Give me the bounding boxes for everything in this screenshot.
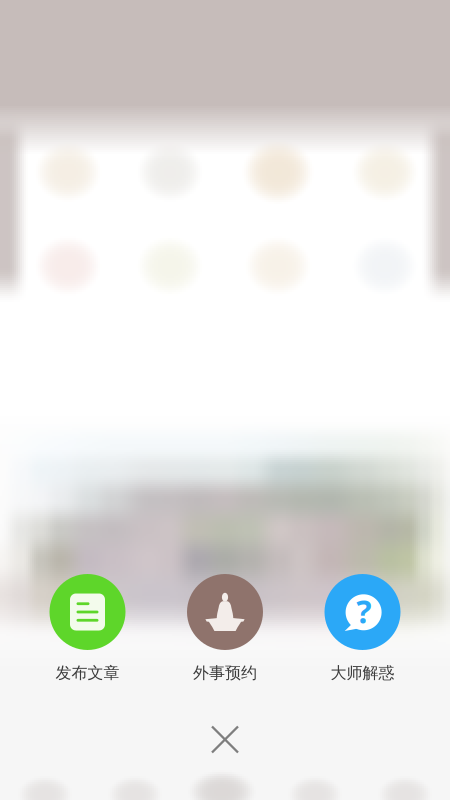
staticText: 外事预约 xyxy=(193,663,257,683)
staticText: 发布文章 xyxy=(55,663,119,683)
staticText: ? xyxy=(356,590,371,632)
button[interactable]: Close xyxy=(197,711,253,767)
staticText: 大师解惑 xyxy=(330,663,394,683)
button[interactable]: ? xyxy=(304,574,420,682)
button[interactable]: 发布文章 xyxy=(29,574,145,682)
button[interactable]: 外事预约 xyxy=(167,574,283,682)
